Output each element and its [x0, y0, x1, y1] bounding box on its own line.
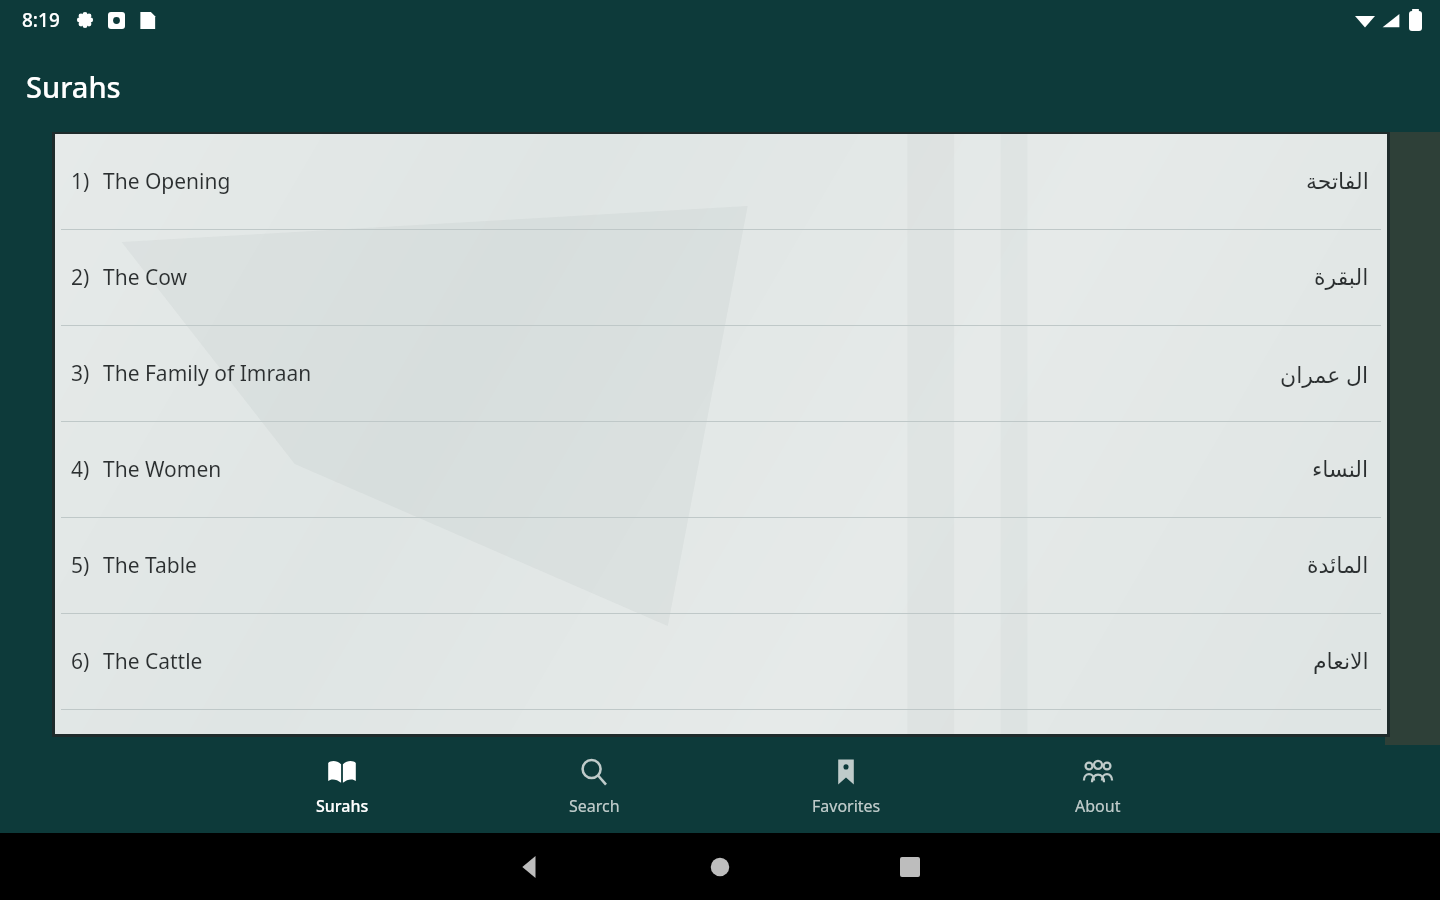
button[interactable]: 2) — [55, 230, 1387, 325]
staticText: About — [1075, 795, 1121, 817]
staticText: الفاتحة — [1306, 169, 1369, 195]
staticText: The Women — [103, 455, 1312, 484]
staticText: 4) — [71, 455, 90, 484]
button[interactable]: Surahs — [216, 745, 468, 833]
button[interactable]: 6) — [55, 614, 1387, 709]
button[interactable]: Recent apps — [815, 837, 1005, 897]
staticText: Favorites — [812, 795, 881, 817]
staticText: The Opening — [103, 167, 1306, 196]
staticText: 3) — [71, 359, 90, 388]
staticText: 8:19 — [22, 7, 60, 33]
staticText: The Family of Imraan — [103, 359, 1280, 388]
staticText: المائدة — [1307, 553, 1369, 579]
button[interactable]: About — [972, 745, 1224, 833]
button[interactable]: Search — [468, 745, 720, 833]
staticText: 2) — [71, 263, 90, 292]
staticText: The Cattle — [103, 647, 1313, 676]
staticText: 1) — [71, 167, 90, 196]
button[interactable]: Home — [625, 837, 815, 897]
button[interactable]: 1) — [55, 134, 1387, 229]
button[interactable]: Back — [435, 837, 625, 897]
staticText: النساء — [1312, 457, 1369, 483]
staticText: 6) — [71, 647, 90, 676]
other: About — [1083, 757, 1113, 787]
button[interactable]: 5) — [55, 518, 1387, 613]
other: Surahs — [327, 757, 357, 787]
staticText: 5) — [71, 551, 90, 580]
staticText: Search — [569, 795, 620, 817]
other: Search — [579, 757, 609, 787]
staticText: Surahs — [316, 795, 369, 817]
staticText: The Table — [103, 551, 1307, 580]
other: Favorites — [831, 757, 861, 787]
staticText: البقرة — [1314, 265, 1369, 291]
button[interactable]: 3) — [55, 326, 1387, 421]
staticText: The Cow — [103, 263, 1314, 292]
staticText: Surahs — [26, 67, 121, 106]
button[interactable]: 4) — [55, 422, 1387, 517]
button[interactable]: Favorites — [720, 745, 972, 833]
staticText: الانعام — [1313, 649, 1369, 675]
staticText: ال عمران — [1280, 359, 1369, 389]
